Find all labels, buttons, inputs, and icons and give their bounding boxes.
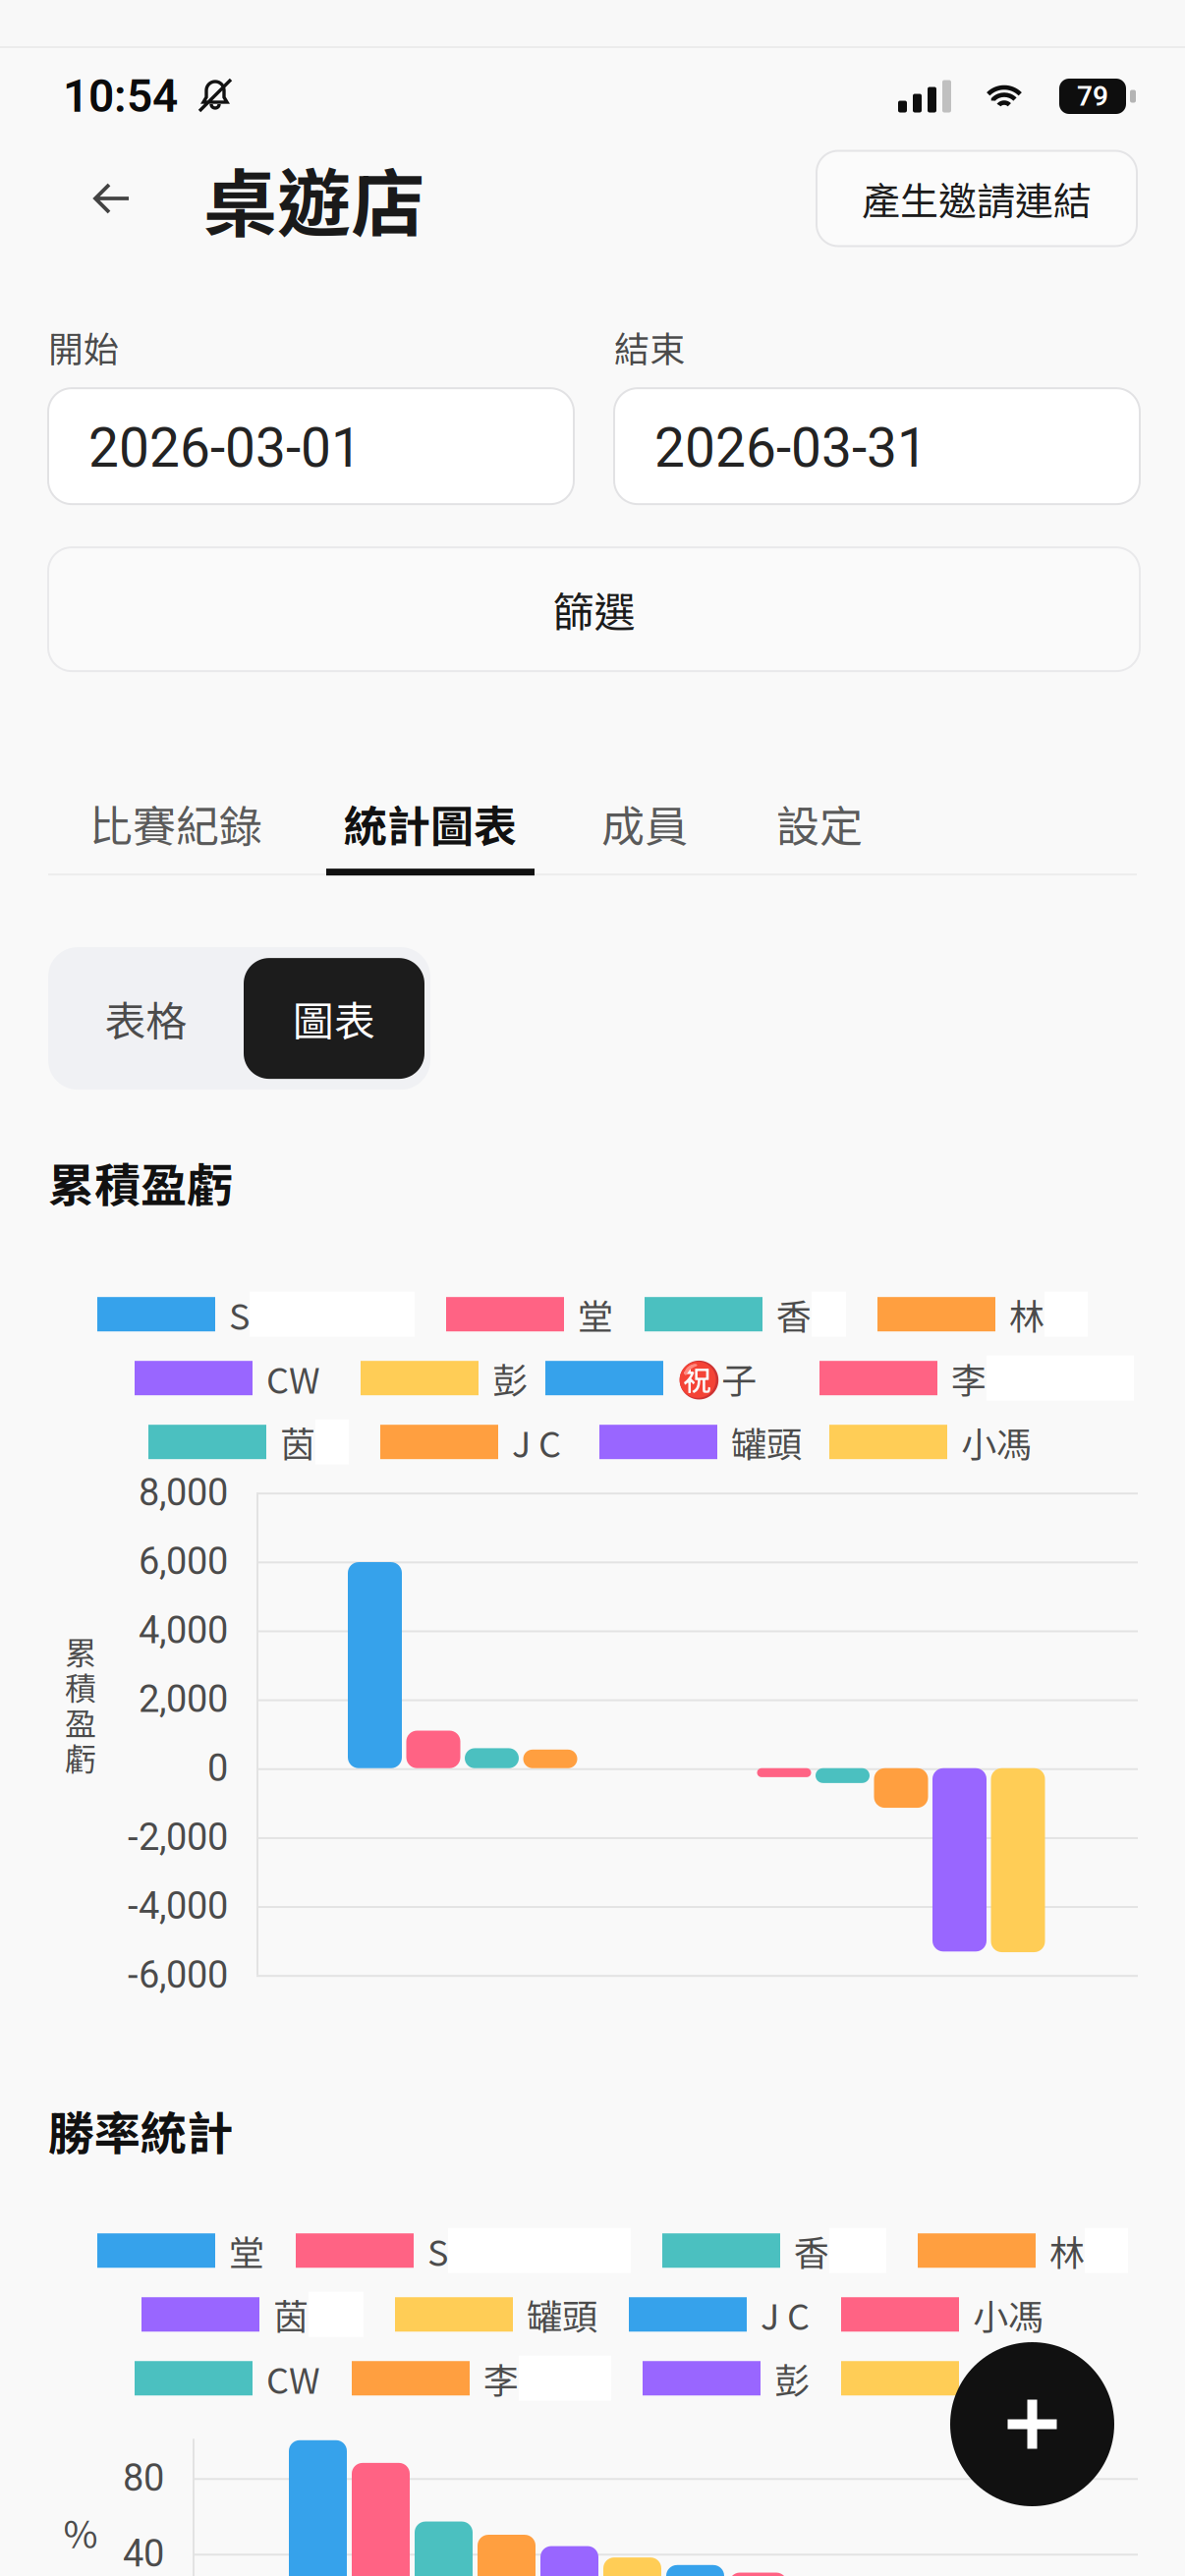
staticText: 2026-03-31 bbox=[654, 416, 928, 480]
staticText: 累積盈虧 bbox=[48, 1149, 233, 1215]
staticText: 累 bbox=[65, 1628, 96, 1673]
staticText: 虧 bbox=[65, 1734, 96, 1780]
staticText: 0 bbox=[207, 1746, 228, 1790]
staticText: ㊗️子 bbox=[677, 1352, 757, 1404]
staticText: 茵 bbox=[280, 1416, 315, 1467]
staticText: 結束 bbox=[614, 321, 685, 372]
staticText: 開始 bbox=[48, 321, 119, 372]
staticText: 彭 bbox=[774, 2353, 810, 2404]
staticText: -2,000 bbox=[128, 1815, 228, 1859]
button[interactable]: 圖表 bbox=[244, 958, 424, 1079]
staticText: 6,000 bbox=[139, 1540, 228, 1583]
staticText: 統計圖表 bbox=[344, 792, 517, 855]
staticText: J C bbox=[512, 1416, 561, 1467]
staticText: 盈 bbox=[65, 1699, 96, 1744]
staticText: 罐頭 bbox=[527, 2289, 597, 2340]
staticText: 堂 bbox=[578, 1289, 613, 1340]
staticText: 表格 bbox=[105, 989, 187, 1048]
staticText: 桌遊店 bbox=[203, 145, 424, 252]
staticText: 小馮 bbox=[961, 1416, 1032, 1467]
staticText: 設定 bbox=[776, 792, 863, 855]
staticText: S bbox=[427, 2225, 448, 2276]
button[interactable]: 比賽紀錄 bbox=[48, 771, 304, 875]
staticText: 80 bbox=[123, 2456, 164, 2500]
button[interactable]: 表格 bbox=[48, 947, 244, 1090]
staticText: 茵 bbox=[273, 2289, 309, 2340]
staticText: 圖表 bbox=[293, 989, 375, 1048]
button[interactable]: 產生邀請連結 bbox=[817, 151, 1137, 246]
staticText: 小馮 bbox=[973, 2289, 1044, 2340]
staticText: 香 bbox=[794, 2225, 829, 2276]
staticText: 2,000 bbox=[139, 1677, 228, 1721]
staticText: 8,000 bbox=[139, 1471, 228, 1514]
staticText: 勝率統計 bbox=[48, 2097, 233, 2164]
staticText: -4,000 bbox=[128, 1884, 228, 1928]
button[interactable]: Add bbox=[950, 2342, 1114, 2506]
staticText: 李 bbox=[483, 2353, 519, 2404]
staticText: 林 bbox=[1009, 1289, 1044, 1340]
staticText: -6,000 bbox=[128, 1953, 228, 1997]
button[interactable]: Back bbox=[49, 149, 175, 248]
staticText: 4,000 bbox=[139, 1608, 228, 1652]
staticText: CW bbox=[266, 2353, 320, 2404]
staticText: J C bbox=[761, 2289, 810, 2340]
button[interactable]: 成員 bbox=[557, 771, 732, 875]
staticText: % bbox=[63, 2505, 98, 2559]
staticText: 產生邀請連結 bbox=[862, 171, 1092, 226]
staticText: CW bbox=[266, 1352, 320, 1404]
staticText: 比賽紀錄 bbox=[89, 792, 262, 855]
staticText: 篩選 bbox=[553, 579, 635, 639]
staticText: 李 bbox=[951, 1352, 987, 1404]
button[interactable]: 統計圖表 bbox=[304, 771, 557, 875]
staticText: 40 bbox=[123, 2532, 164, 2576]
staticText: 香 bbox=[776, 1289, 812, 1340]
staticText: 堂 bbox=[229, 2225, 264, 2276]
staticText: 成員 bbox=[601, 792, 688, 855]
staticText: 2026-03-01 bbox=[88, 416, 362, 480]
staticText: S bbox=[229, 1289, 250, 1340]
button[interactable]: 設定 bbox=[732, 771, 907, 875]
staticText: 79 bbox=[1077, 80, 1108, 112]
button[interactable]: 2026-03-01 bbox=[48, 388, 574, 504]
button[interactable]: 篩選 bbox=[48, 547, 1140, 671]
staticText: 彭 bbox=[492, 1352, 528, 1404]
staticText: 積 bbox=[65, 1663, 96, 1709]
button[interactable]: 2026-03-31 bbox=[614, 388, 1140, 504]
staticText: 10:54 bbox=[63, 70, 178, 123]
staticText: 罐頭 bbox=[731, 1416, 802, 1467]
staticText: 林 bbox=[1049, 2225, 1085, 2276]
